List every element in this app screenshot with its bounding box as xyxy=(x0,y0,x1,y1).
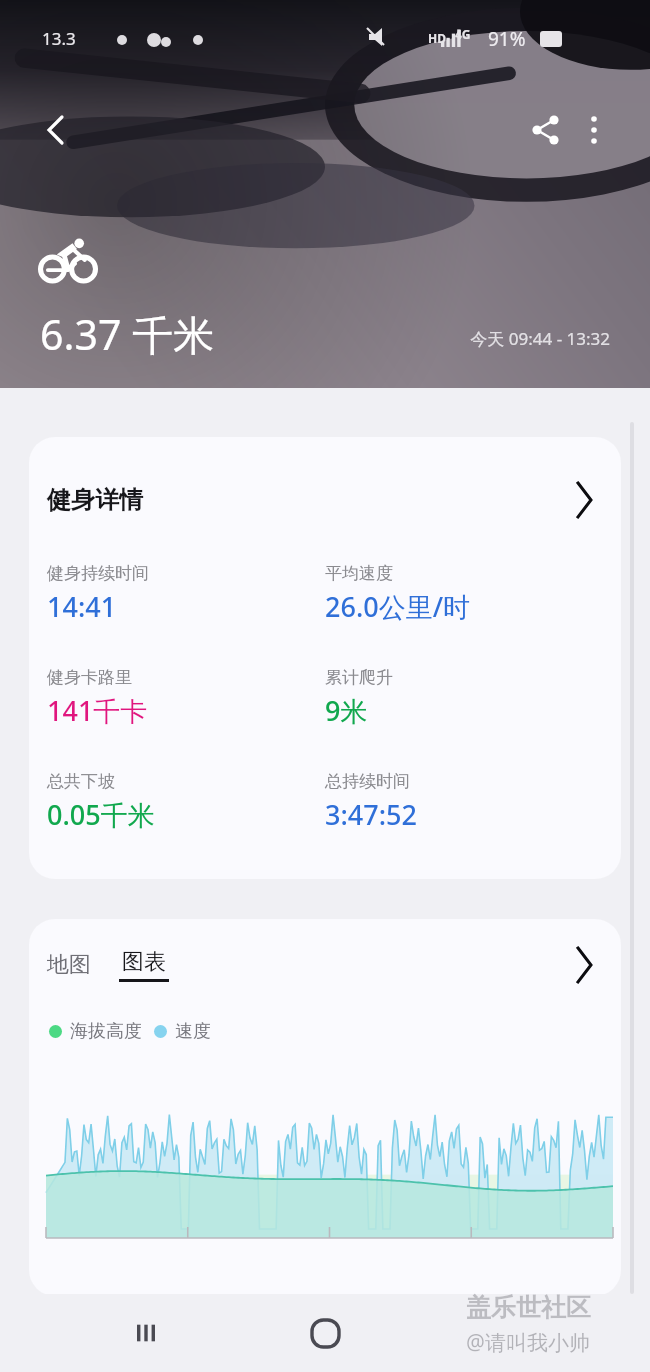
staticText: 14:41 xyxy=(47,588,117,625)
staticText: 6.37 千米 xyxy=(40,306,215,362)
button[interactable]: 健身详情 xyxy=(29,437,621,879)
button[interactable]: Recents xyxy=(108,1294,183,1372)
staticText: 累计爬升 xyxy=(325,667,393,688)
staticText: 91% xyxy=(488,26,526,52)
staticText: 平均速度 xyxy=(325,563,393,584)
staticText: 9米 xyxy=(325,692,368,729)
staticText: @请叫我小帅 xyxy=(466,1328,590,1357)
staticText: 4G xyxy=(455,26,471,42)
staticText: 地图 xyxy=(47,951,91,979)
staticText: 盖乐世社区 xyxy=(466,1292,591,1323)
staticText: 13.3 xyxy=(42,27,76,50)
staticText: 健身持续时间 xyxy=(47,563,149,584)
button[interactable]: Open chart xyxy=(565,946,603,984)
button[interactable]: More options xyxy=(568,104,620,156)
button[interactable]: Back xyxy=(30,104,82,156)
staticText: 0.05千米 xyxy=(47,796,155,833)
staticText: 总共下坡 xyxy=(47,771,115,792)
button[interactable]: Share xyxy=(520,104,572,156)
staticText: 健身详情 xyxy=(47,485,143,515)
staticText: 健身卡路里 xyxy=(47,667,132,688)
staticText: 速度 xyxy=(175,1020,211,1043)
button[interactable]: Home xyxy=(288,1294,363,1372)
staticText: 今天 09:44 - 13:32 xyxy=(330,327,610,350)
staticText: 26.0公里/时 xyxy=(325,588,471,625)
button[interactable]: 图表 xyxy=(119,948,169,982)
staticText: 海拔高度 xyxy=(70,1020,142,1043)
staticText: 图表 xyxy=(122,948,166,976)
staticText: 总持续时间 xyxy=(325,771,410,792)
staticText: 141千卡 xyxy=(47,692,148,729)
staticText: 3:47:52 xyxy=(325,796,417,833)
staticText: HD xyxy=(428,30,446,46)
button[interactable]: 地图 xyxy=(47,951,97,979)
